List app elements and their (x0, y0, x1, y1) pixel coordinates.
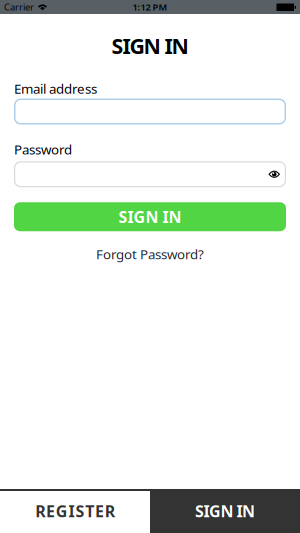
staticText: 1:12 PM (132, 1, 167, 13)
button[interactable]: Forgot Password? (96, 245, 204, 263)
staticText: Password (14, 140, 72, 158)
staticText: REGISTER (35, 500, 115, 522)
button[interactable] (14, 161, 286, 187)
staticText: Carrier (4, 1, 34, 13)
button[interactable]: SIGN IN (150, 491, 300, 533)
staticText: Forgot Password? (96, 245, 204, 263)
staticText: Email address (14, 80, 97, 97)
staticText: SIGN IN (111, 31, 188, 60)
button[interactable]: REGISTER (0, 491, 150, 533)
staticText: SIGN IN (118, 206, 181, 227)
button[interactable] (14, 98, 286, 124)
button[interactable]: Show password (268, 170, 280, 178)
button[interactable]: SIGN IN (14, 202, 286, 231)
staticText: SIGN IN (195, 500, 255, 522)
